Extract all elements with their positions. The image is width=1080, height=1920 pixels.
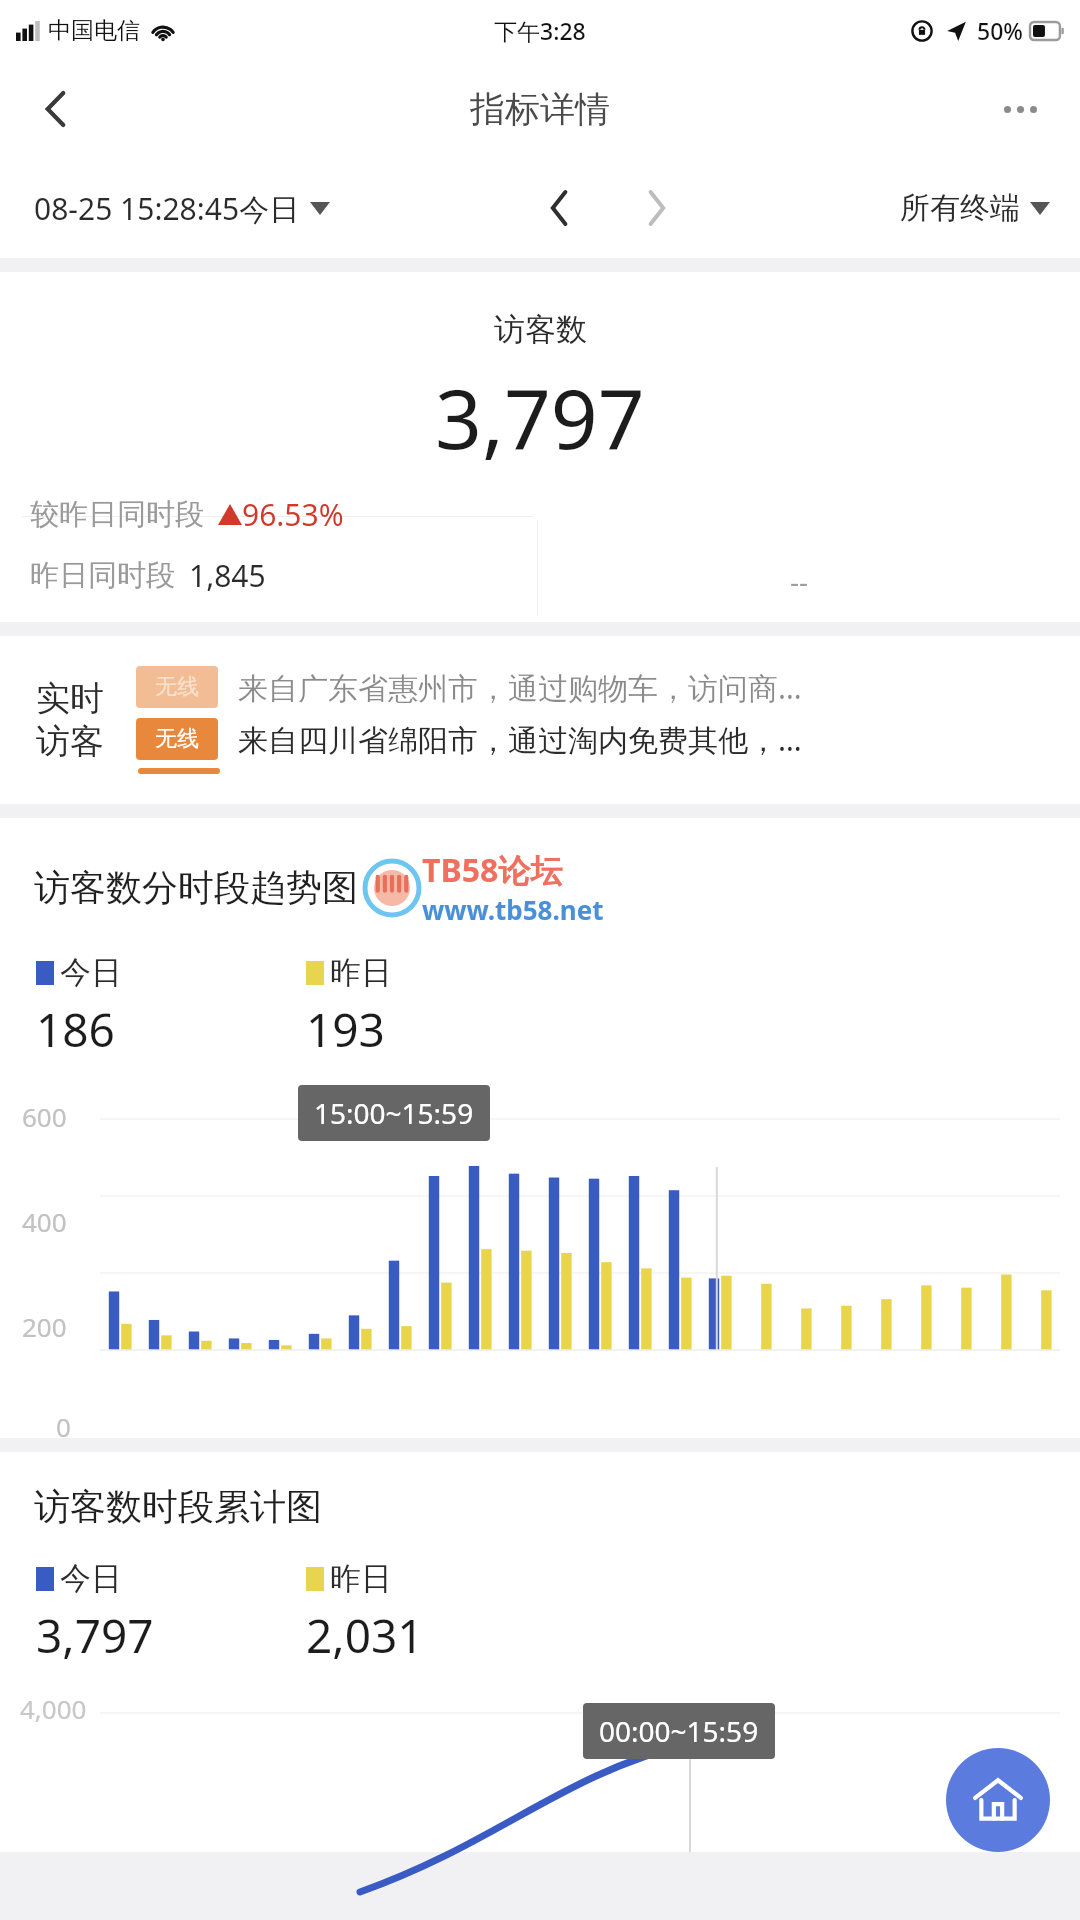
staticText: 600 bbox=[22, 1099, 67, 1134]
staticText: 实时 bbox=[36, 677, 104, 720]
staticText: 15:00~15:59 bbox=[314, 1094, 474, 1132]
staticText: 00:00~15:59 bbox=[599, 1712, 759, 1750]
staticText: 来自四川省绵阳市，通过淘内免费其他，… bbox=[238, 719, 802, 760]
staticText: 今日 bbox=[60, 1559, 122, 1598]
staticText: 下午3:28 bbox=[494, 15, 586, 46]
staticText: -- bbox=[790, 562, 809, 600]
staticText: 3,797 bbox=[435, 361, 645, 473]
staticText: 6 bbox=[322, 1437, 337, 1472]
button[interactable]: Next bbox=[629, 181, 683, 235]
button[interactable]: Home bbox=[946, 1748, 1050, 1852]
staticText: 186 bbox=[36, 998, 115, 1061]
staticText: 200 bbox=[22, 1309, 67, 1344]
staticText: 0 bbox=[104, 1437, 119, 1472]
staticText: 中国电信 bbox=[48, 16, 140, 45]
staticText: 昨日同时段 bbox=[30, 557, 175, 594]
button[interactable]: More options bbox=[988, 77, 1052, 141]
staticText: 较昨日同时段 bbox=[30, 496, 204, 533]
staticText: 今日 bbox=[60, 953, 122, 992]
staticText: 96.53% bbox=[242, 494, 344, 535]
staticText: 1,845 bbox=[189, 555, 266, 596]
button[interactable]: 08-25 15:28:45今日 bbox=[34, 188, 330, 229]
button[interactable]: Previous bbox=[533, 181, 587, 235]
staticText: 0 bbox=[56, 1409, 71, 1444]
staticText: 193 bbox=[306, 998, 385, 1061]
button[interactable]: 无线 bbox=[136, 666, 1060, 774]
staticText: TB58论坛 bbox=[422, 848, 563, 892]
staticText: 所有终端 bbox=[900, 189, 1020, 227]
staticText: 访客数分时段趋势图 bbox=[34, 865, 358, 910]
staticText: www.tb58.net bbox=[422, 892, 604, 927]
button[interactable]: Back bbox=[24, 77, 88, 141]
staticText: 访客数时段累计图 bbox=[34, 1484, 322, 1529]
staticText: 昨日 bbox=[330, 953, 392, 992]
staticText: 23 bbox=[938, 1437, 968, 1472]
staticText: 400 bbox=[22, 1204, 67, 1239]
staticText: 08-25 15:28:45今日 bbox=[34, 188, 300, 229]
staticText: 50% bbox=[977, 15, 1023, 46]
staticText: 3,797 bbox=[36, 1604, 154, 1667]
staticText: 昨日 bbox=[330, 1559, 392, 1598]
staticText: 指标详情 bbox=[470, 87, 610, 131]
button[interactable]: 所有终端 bbox=[900, 189, 1050, 227]
staticText: 访客数 bbox=[494, 310, 587, 349]
staticText: 12 bbox=[536, 1437, 566, 1472]
staticText: 4,000 bbox=[20, 1691, 87, 1726]
staticText: 无线 bbox=[155, 673, 199, 701]
staticText: 来自广东省惠州市，通过购物车，访问商… bbox=[238, 667, 802, 708]
staticText: 无线 bbox=[155, 725, 199, 753]
staticText: 访客 bbox=[36, 720, 104, 763]
staticText: 2,031 bbox=[306, 1604, 424, 1667]
staticText: 18 bbox=[758, 1437, 788, 1472]
